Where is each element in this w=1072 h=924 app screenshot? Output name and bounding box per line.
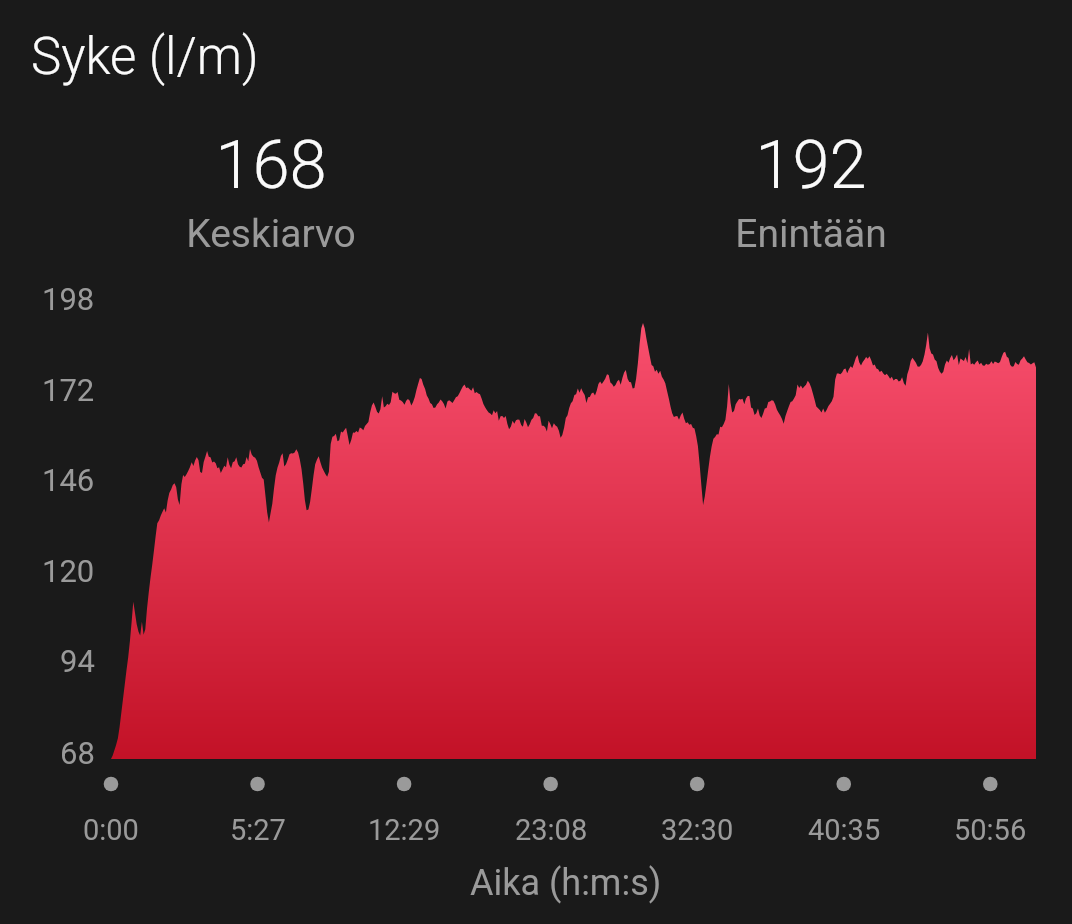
staticText: 172 [42, 372, 95, 408]
button[interactable]: 168 [71, 126, 471, 251]
staticText: 94 [60, 643, 95, 679]
staticText: 5:27 [230, 813, 286, 847]
button[interactable]: 192 [611, 126, 1011, 251]
staticText: Syke (l/m) [31, 27, 259, 87]
staticText: Aika (h:m:s) [470, 862, 662, 904]
staticText: 32:30 [661, 813, 734, 847]
staticText: 146 [42, 462, 95, 498]
staticText: 0:00 [83, 813, 139, 847]
staticText: 50:56 [954, 813, 1027, 847]
staticText: Enintään [735, 211, 887, 257]
staticText: 192 [755, 126, 867, 205]
staticText: 168 [215, 126, 327, 205]
staticText: 40:35 [808, 813, 881, 847]
button[interactable]: Syke (l/m) [31, 20, 271, 88]
staticText: 120 [42, 553, 95, 589]
other: Heart rate over time area chart [0, 0, 1072, 924]
staticText: 12:29 [368, 813, 441, 847]
staticText: 198 [42, 281, 95, 317]
staticText: Keskiarvo [186, 211, 356, 257]
staticText: 68 [60, 735, 95, 771]
staticText: 23:08 [515, 813, 588, 847]
